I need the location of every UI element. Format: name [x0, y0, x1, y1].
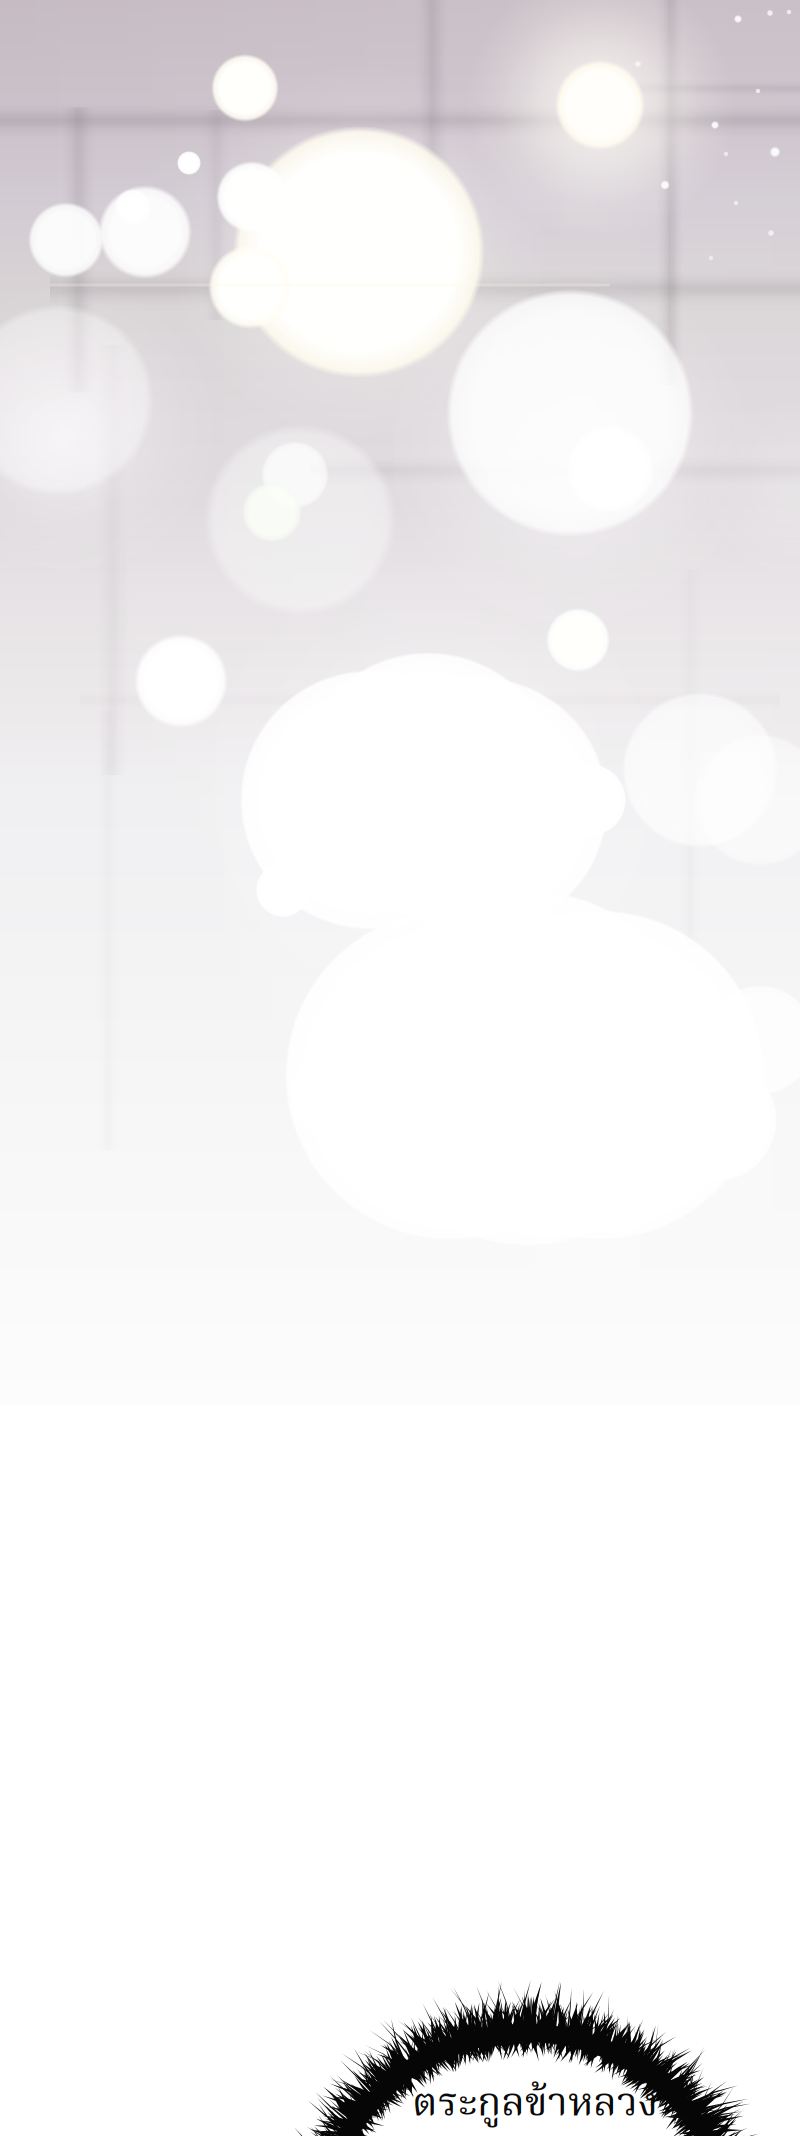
staticText: ตระกูลข้าหลวง [412, 2073, 658, 2136]
